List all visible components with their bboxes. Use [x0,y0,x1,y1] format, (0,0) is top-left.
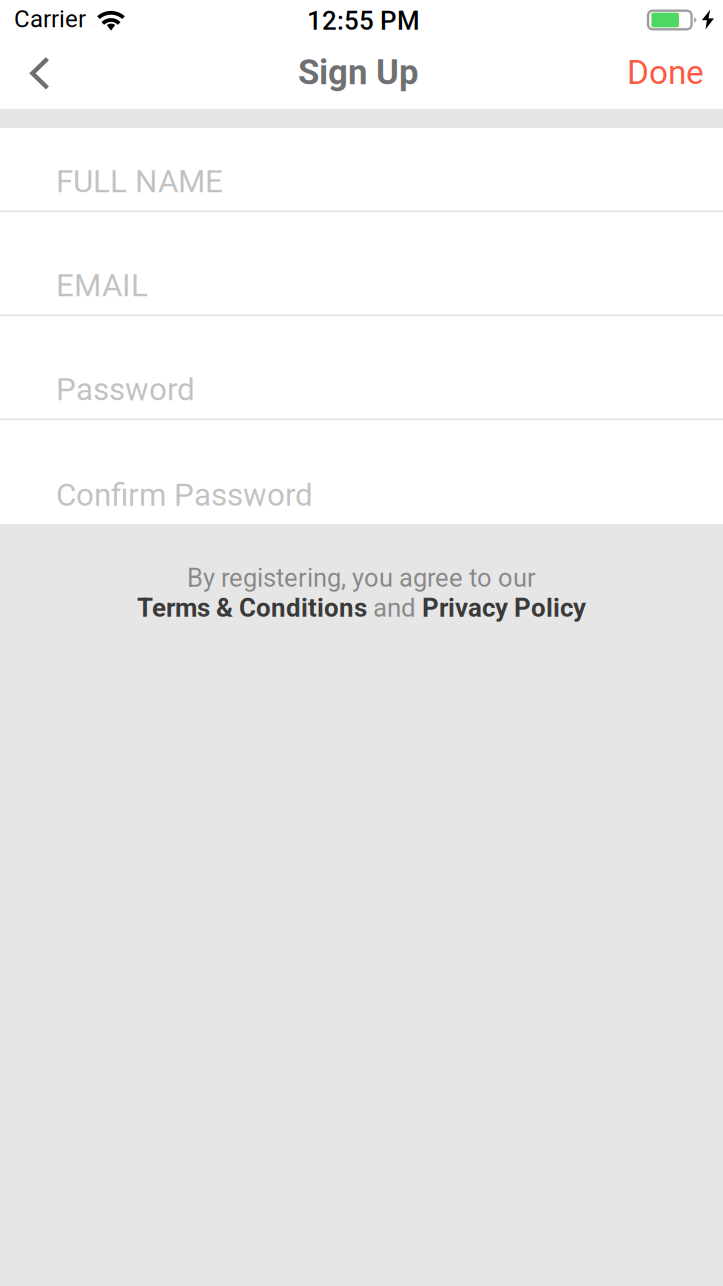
staticText: Privacy Policy [422,593,586,623]
button[interactable]: EMAIL [0,212,723,316]
button[interactable]: Confirm Password [0,420,723,524]
button[interactable]: Terms & Conditions [137,593,367,623]
staticText: Sign Up [298,52,419,93]
button[interactable]: FULL NAME [0,128,723,212]
staticText: Carrier [14,5,86,33]
staticText: and [367,593,422,623]
button[interactable]: Privacy Policy [422,593,586,623]
staticText: FULL NAME [56,163,223,200]
staticText: 12:55 PM [307,6,420,36]
staticText: EMAIL [56,267,148,304]
staticText: Confirm Password [56,477,313,513]
staticText: By registering, you agree to our [187,563,536,593]
button[interactable]: Done [617,44,712,109]
staticText: Done [627,53,704,92]
button[interactable]: Back [10,44,70,109]
staticText: Terms & Conditions [137,593,367,623]
button[interactable]: Password [0,316,723,420]
staticText: Password [56,371,195,408]
